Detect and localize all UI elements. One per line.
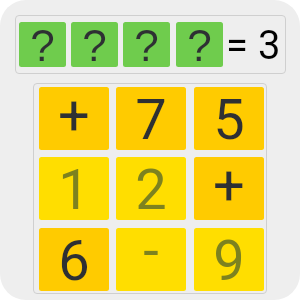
staticText: 6 [58,228,90,291]
button[interactable]: Answer slot 2, empty [71,22,118,67]
staticText: 5 [213,87,245,150]
button[interactable]: 7 [116,87,186,150]
button[interactable]: 2 [116,157,186,220]
staticText: 9 [213,228,245,291]
staticText: + [58,87,90,146]
staticText: ? [134,22,159,66]
button[interactable]: Answer slot 4, empty [176,22,223,67]
button[interactable]: Answer slot 3, empty [123,22,170,67]
button[interactable]: 5 [194,87,264,150]
button[interactable]: 1 [39,157,109,220]
staticText: 2 [135,157,167,220]
button[interactable]: 6 [39,228,109,291]
button[interactable]: - [116,228,186,291]
button[interactable]: 9 [194,228,264,291]
staticText: 1 [58,157,90,220]
staticText: + [213,157,245,216]
staticText: ? [187,22,212,66]
staticText: 7 [135,87,167,150]
button[interactable]: + [39,87,109,150]
button[interactable]: Answer slot 1, empty [19,22,66,67]
staticText: ? [30,22,55,66]
staticText: - [143,228,159,281]
staticText: ? [82,22,107,66]
button[interactable]: + [194,157,264,220]
staticText: = 3 [226,22,281,68]
